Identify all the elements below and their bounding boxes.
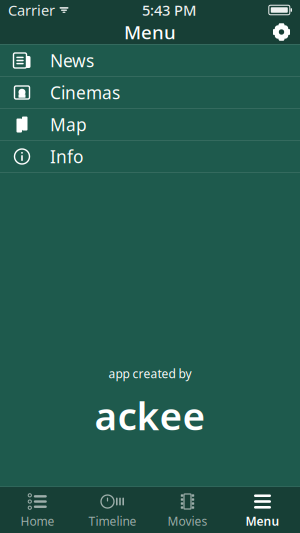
staticText: Timeline	[88, 513, 136, 529]
staticText: Menu	[245, 513, 279, 529]
staticText: News	[50, 49, 94, 72]
button[interactable]: Movies	[150, 487, 225, 533]
button[interactable]: Map	[0, 109, 300, 141]
button[interactable]: News	[0, 45, 300, 77]
staticText: ackee	[94, 390, 205, 441]
button[interactable]: Cinemas	[0, 77, 300, 109]
staticText: Carrier	[8, 0, 55, 20]
button[interactable]: Timeline	[75, 487, 150, 533]
button[interactable]: Info	[0, 141, 300, 173]
button[interactable]: Settings	[263, 19, 300, 44]
button[interactable]: Menu	[225, 487, 300, 533]
staticText: Map	[50, 113, 87, 136]
staticText: Home	[20, 513, 54, 529]
staticText: Menu	[124, 20, 176, 44]
staticText: Cinemas	[50, 81, 120, 104]
staticText: Info	[50, 145, 83, 168]
staticText: app created by	[108, 366, 191, 382]
button[interactable]: Home	[0, 487, 75, 533]
staticText: Movies	[167, 513, 207, 529]
staticText: 5:43 PM	[142, 0, 196, 20]
